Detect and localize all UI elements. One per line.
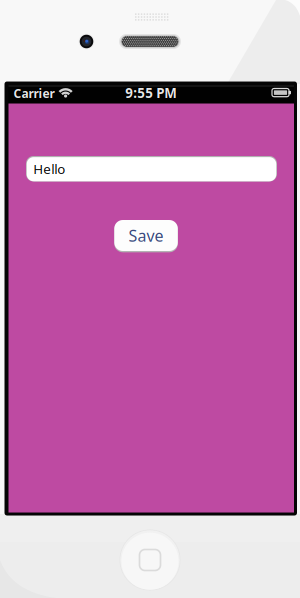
staticText: 9:55 PM xyxy=(125,84,177,102)
button[interactable]: Save xyxy=(114,220,178,252)
staticText: Save xyxy=(129,225,164,246)
staticText: Hello xyxy=(33,160,65,178)
staticText: Carrier xyxy=(13,85,54,101)
